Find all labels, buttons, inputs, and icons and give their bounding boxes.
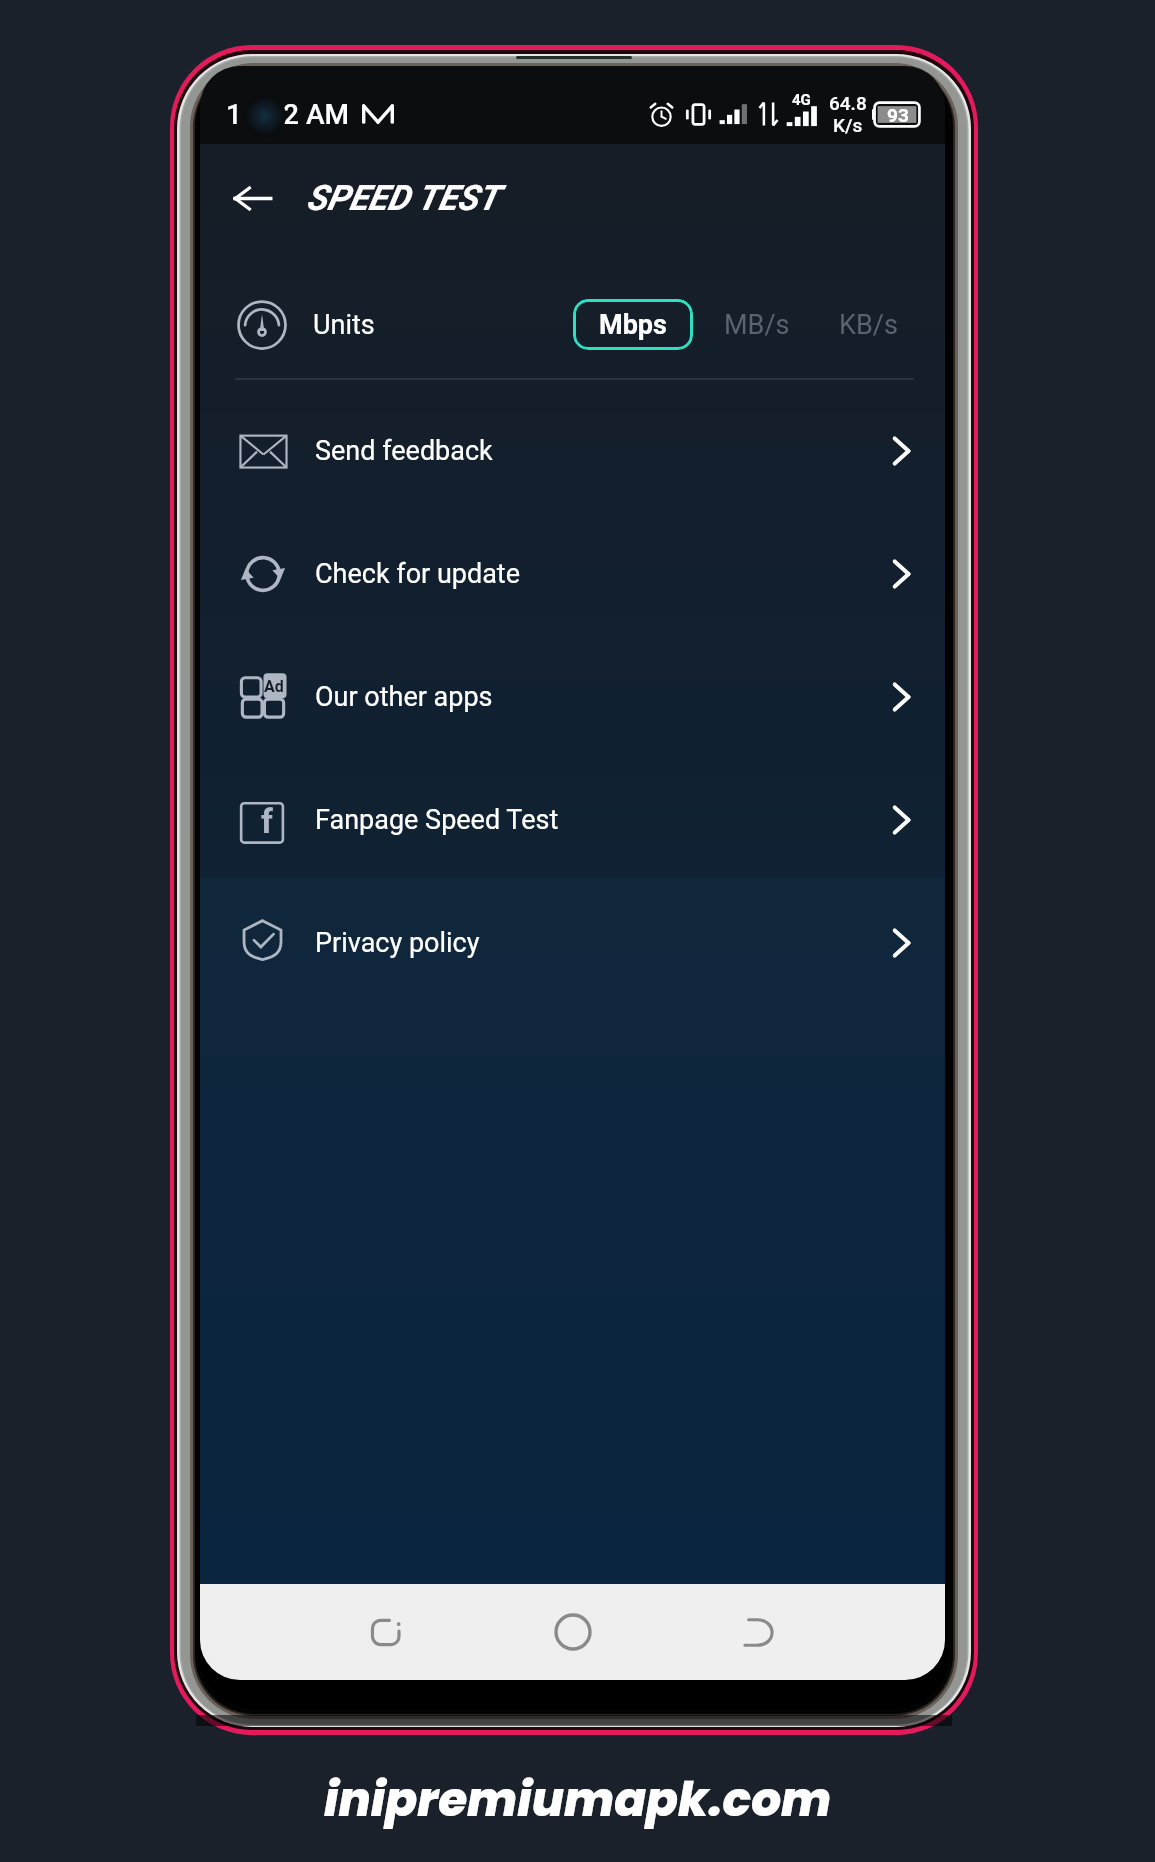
button[interactable]: KB/s	[831, 295, 906, 355]
staticText: Privacy policy	[315, 927, 480, 959]
staticText: Send feedback	[315, 435, 493, 467]
staticText: Units	[313, 309, 375, 341]
button[interactable]: Check for update	[200, 512, 945, 635]
staticText: inipremiumapk.com	[324, 1767, 832, 1833]
button[interactable]: Back	[712, 1584, 808, 1680]
button[interactable]: Send feedback	[200, 389, 945, 512]
button[interactable]: Back	[220, 166, 284, 230]
staticText: 64.8	[829, 92, 867, 114]
staticText: MB/s	[724, 309, 790, 341]
staticText: 2 AM	[283, 98, 350, 131]
staticText: 4G	[792, 91, 811, 109]
button[interactable]: MB/s	[716, 295, 798, 355]
button[interactable]: Mbps	[573, 299, 693, 350]
staticText: SPEED TEST	[306, 178, 499, 219]
button[interactable]: Privacy policy	[200, 881, 945, 1004]
staticText: Fanpage Speed Test	[315, 804, 559, 836]
button[interactable]: f	[200, 758, 945, 881]
staticText: 1	[226, 98, 242, 131]
staticText: Mbps	[599, 309, 667, 341]
staticText: Ad	[264, 677, 284, 696]
staticText: Check for update	[315, 558, 521, 590]
staticText: Our other apps	[315, 681, 493, 713]
staticText: KB/s	[839, 309, 898, 341]
button[interactable]: Ad	[200, 635, 945, 758]
staticText: 93	[887, 104, 909, 126]
button[interactable]: Recents	[338, 1584, 434, 1680]
staticText: K/s	[833, 114, 863, 136]
button[interactable]: Home	[525, 1584, 621, 1680]
staticText: f	[261, 802, 273, 841]
